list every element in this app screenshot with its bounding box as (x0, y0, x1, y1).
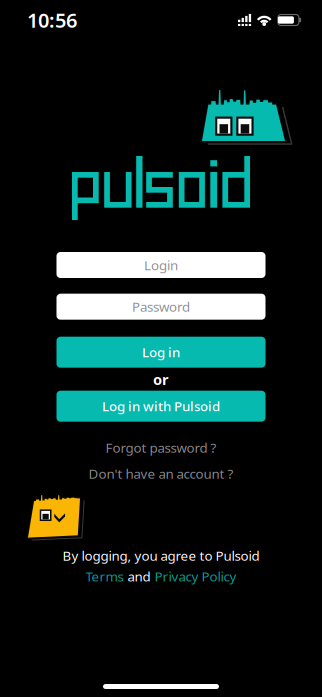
button[interactable]: Log in with Pulsoid (56, 391, 265, 422)
staticText: Terms (85, 567, 123, 585)
button[interactable]: Privacy Policy (154, 567, 236, 585)
button[interactable]: Log in (56, 337, 265, 368)
staticText: or (153, 369, 169, 389)
button[interactable]: Login (56, 252, 265, 278)
staticText: Privacy Policy (154, 567, 236, 585)
staticText: Log in with Pulsoid (102, 397, 220, 415)
button[interactable]: Forgot password ? (56, 439, 265, 457)
button[interactable]: Don't have an account ? (56, 465, 265, 483)
staticText: Don't have an account ? (88, 465, 233, 482)
staticText: Log in (142, 343, 180, 361)
staticText: 10:56 (27, 7, 77, 33)
staticText: Forgot password ? (105, 439, 216, 456)
staticText: Login (144, 256, 178, 274)
staticText: By logging, you agree to Pulsoid (62, 547, 259, 564)
button[interactable]: Terms (85, 567, 123, 585)
staticText: Password (132, 298, 190, 315)
staticText: and (127, 567, 150, 585)
button[interactable]: Password (56, 294, 265, 320)
